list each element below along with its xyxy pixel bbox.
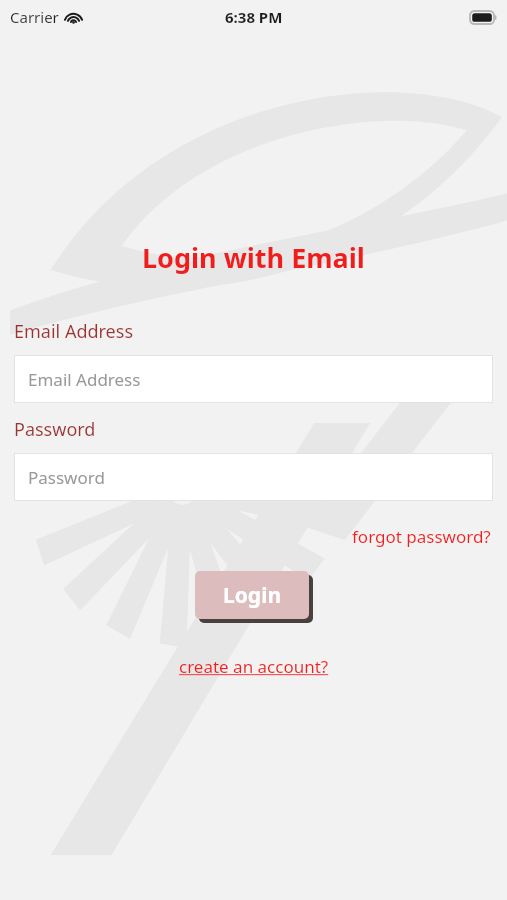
other: Battery full [470,11,497,24]
button[interactable]: forgot password? [352,523,507,550]
other: Wi-Fi signal [65,11,82,24]
staticText: Email Address [28,368,141,391]
button[interactable]: Login [195,571,309,619]
staticText: Email Address [14,319,134,344]
staticText: Login [223,581,282,610]
staticText: Password [28,466,105,489]
staticText: 6:38 PM [225,7,283,27]
button[interactable]: Email Address [14,355,493,403]
staticText: Carrier [10,7,59,27]
staticText: Password [14,417,96,442]
staticText: create an account? [179,655,329,678]
button[interactable]: Password [14,453,493,501]
staticText: Login with Email [142,239,365,276]
staticText: forgot password? [352,525,491,548]
button[interactable]: create an account? [175,651,333,682]
